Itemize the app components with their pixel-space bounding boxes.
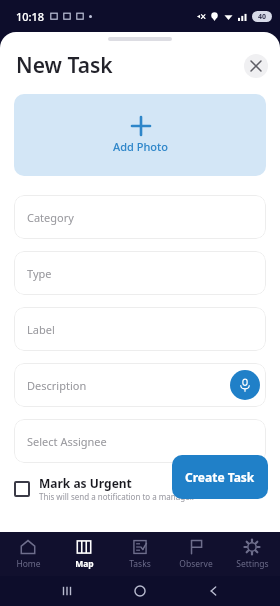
button[interactable]: Observe [168,532,224,576]
button[interactable]: Category [14,195,266,239]
staticText: New Task [16,51,113,80]
button[interactable]: Mark as Urgent [14,475,266,502]
staticText: Type [27,266,52,281]
button[interactable]: Settings [224,532,280,576]
button[interactable]: Description [14,363,266,407]
staticText: Category [27,210,74,225]
button[interactable]: Create Task [172,455,268,499]
other: Back [207,584,221,598]
button[interactable]: Add Photo [14,94,266,176]
staticText: Add Photo [113,139,168,154]
other: Recents [60,584,74,598]
button[interactable]: Map [56,532,112,576]
staticText: Home [16,558,41,570]
staticText: Mark as Urgent [39,475,132,491]
staticText: 40 [258,12,267,22]
staticText: 10:18 [16,9,45,24]
staticText: Map [75,558,94,570]
button[interactable]: Voice input [230,370,260,400]
staticText: Settings [236,558,269,570]
button[interactable]: Close [244,54,268,78]
staticText: This will send a notification to a manag… [39,491,194,502]
staticText: Observe [179,558,213,570]
button[interactable]: Tasks [112,532,168,576]
button[interactable]: Type [14,251,266,295]
button[interactable]: Home [0,532,56,576]
button[interactable]: Label [14,307,266,351]
other: Home [133,584,147,598]
staticText: Tasks [129,558,151,570]
staticText: Label [27,322,55,337]
staticText: Select Assignee [27,434,107,449]
staticText: Description [27,378,87,393]
button[interactable]: Select Assignee [14,419,266,463]
staticText: Create Task [185,469,255,485]
